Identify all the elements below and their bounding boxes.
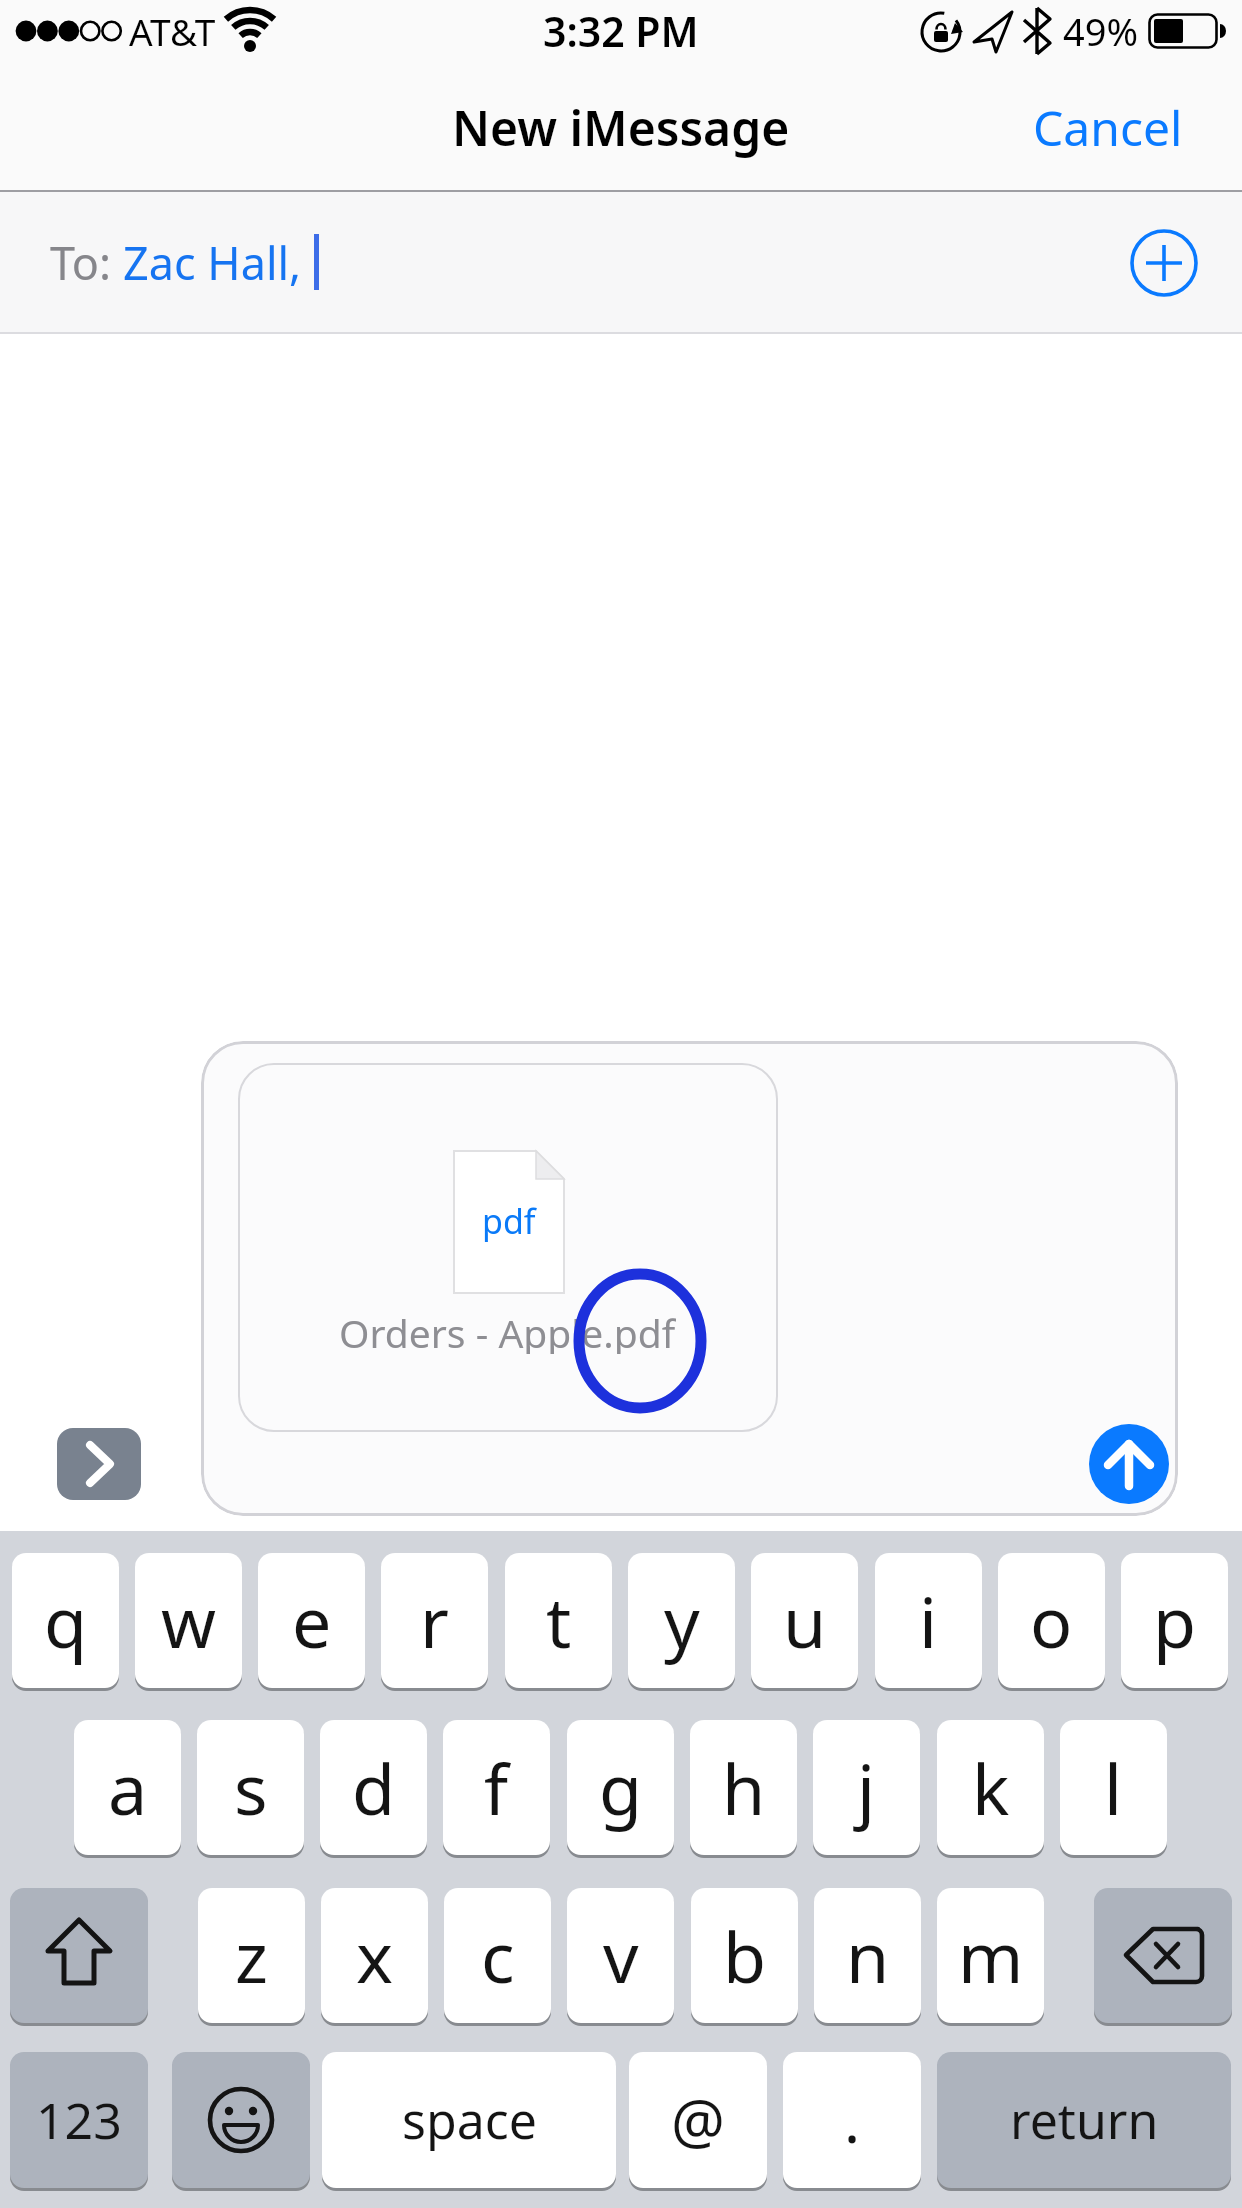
button[interactable] <box>1094 1888 1232 2023</box>
staticText: z <box>235 1908 268 2003</box>
staticText: x <box>356 1908 394 2003</box>
staticText: @ <box>671 2079 725 2161</box>
staticText: e <box>292 1573 332 1668</box>
staticText: l <box>1104 1740 1123 1835</box>
staticText: 123 <box>36 2086 122 2154</box>
staticText: 49% <box>1063 5 1139 57</box>
button[interactable]: u <box>751 1553 858 1688</box>
staticText: u <box>783 1573 827 1668</box>
button[interactable]: return <box>937 2052 1231 2188</box>
button[interactable] <box>10 1888 148 2023</box>
button[interactable]: l <box>1060 1720 1167 1855</box>
button[interactable]: Cancel <box>1002 95 1183 159</box>
staticText: b <box>723 1908 767 2003</box>
button[interactable]: p <box>1121 1553 1228 1688</box>
staticText: To: <box>50 232 112 293</box>
staticText: r <box>420 1573 449 1668</box>
button[interactable]: t <box>505 1553 612 1688</box>
button[interactable]: g <box>567 1720 674 1855</box>
staticText: v <box>603 1908 639 2003</box>
button[interactable]: v <box>567 1888 674 2023</box>
button[interactable] <box>57 1428 141 1500</box>
button[interactable]: r <box>381 1553 488 1688</box>
staticText: t <box>546 1573 572 1668</box>
button[interactable]: x <box>321 1888 428 2023</box>
staticText: q <box>44 1573 88 1668</box>
staticText: pdf <box>482 1198 536 1244</box>
button[interactable]: o <box>998 1553 1105 1688</box>
staticText: i <box>919 1573 938 1668</box>
staticText: space <box>402 2086 537 2154</box>
button[interactable]: z <box>198 1888 305 2023</box>
button[interactable]: a <box>74 1720 181 1855</box>
staticText: c <box>481 1908 515 2003</box>
staticText: a <box>108 1740 148 1835</box>
button[interactable]: space <box>322 2052 616 2188</box>
button[interactable]: y <box>628 1553 735 1688</box>
staticText: Zac Hall, <box>123 232 302 293</box>
button[interactable]: d <box>320 1720 427 1855</box>
staticText: k <box>972 1740 1010 1835</box>
button[interactable]: s <box>197 1720 304 1855</box>
button[interactable] <box>172 2052 310 2188</box>
button[interactable]: m <box>937 1888 1044 2023</box>
button[interactable]: @ <box>629 2052 767 2188</box>
staticText: p <box>1153 1573 1197 1668</box>
button[interactable]: e <box>258 1553 365 1688</box>
staticText: Cancel <box>1033 95 1183 159</box>
button[interactable] <box>1089 1424 1169 1504</box>
staticText: o <box>1030 1573 1073 1668</box>
button[interactable]: j <box>813 1720 920 1855</box>
staticText: h <box>722 1740 766 1835</box>
button[interactable]: . <box>783 2052 921 2188</box>
button[interactable] <box>238 1063 778 1432</box>
button[interactable]: n <box>814 1888 921 2023</box>
button[interactable]: b <box>691 1888 798 2023</box>
staticText: y <box>664 1573 700 1668</box>
button[interactable]: i <box>875 1553 982 1688</box>
button[interactable]: w <box>135 1553 242 1688</box>
staticText: j <box>857 1740 876 1835</box>
button[interactable]: k <box>937 1720 1044 1855</box>
staticText: w <box>161 1573 217 1668</box>
button[interactable]: 123 <box>10 2052 148 2188</box>
staticText: AT&T <box>129 6 216 56</box>
button[interactable]: q <box>12 1553 119 1688</box>
staticText: Orders - Apple.pdf <box>339 1306 676 1354</box>
staticText: n <box>846 1908 890 2003</box>
staticText: m <box>958 1908 1024 2003</box>
staticText: g <box>599 1740 643 1835</box>
staticText: . <box>844 2079 861 2161</box>
button[interactable]: h <box>690 1720 797 1855</box>
staticText: s <box>234 1740 268 1835</box>
button[interactable] <box>1128 227 1200 299</box>
button[interactable]: f <box>443 1720 550 1855</box>
staticText: f <box>484 1740 509 1835</box>
button[interactable]: c <box>444 1888 551 2023</box>
staticText: 3:32 PM <box>543 3 699 59</box>
staticText: return <box>1010 2086 1159 2154</box>
staticText: New iMessage <box>452 95 790 159</box>
staticText: d <box>352 1740 396 1835</box>
